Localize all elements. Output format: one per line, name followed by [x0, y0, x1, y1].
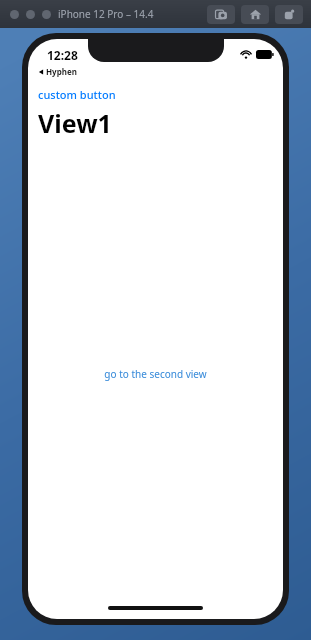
button[interactable]: go to the second view: [104, 367, 207, 381]
button[interactable]: [26, 10, 35, 19]
staticText: Hyphen: [46, 66, 77, 77]
button[interactable]: Rotate: [275, 5, 303, 24]
staticText: custom button: [38, 87, 116, 102]
staticText: go to the second view: [104, 367, 207, 381]
button[interactable]: [42, 10, 51, 19]
button[interactable]: Home: [241, 5, 269, 24]
button[interactable]: custom button: [38, 87, 116, 102]
button[interactable]: Screenshot: [207, 5, 235, 24]
staticText: 12:28: [47, 47, 78, 63]
button[interactable]: Hyphen: [38, 66, 77, 77]
staticText: View1: [38, 106, 112, 140]
staticText: iPhone 12 Pro – 14.4: [58, 7, 154, 21]
button[interactable]: [10, 10, 19, 19]
